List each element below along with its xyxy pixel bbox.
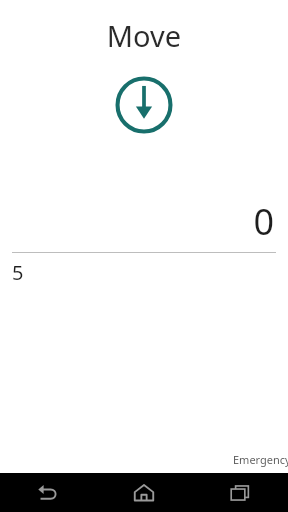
button[interactable]: Recent apps xyxy=(192,473,288,512)
button[interactable]: Home xyxy=(96,473,192,512)
button[interactable]: Back xyxy=(0,473,96,512)
button[interactable]: Move down xyxy=(114,75,174,135)
staticText: 0 xyxy=(253,197,274,246)
button[interactable]: Emergency xyxy=(233,452,288,467)
staticText: Emergency xyxy=(233,452,288,467)
staticText: Move xyxy=(0,16,288,55)
staticText: 5 xyxy=(12,259,24,286)
